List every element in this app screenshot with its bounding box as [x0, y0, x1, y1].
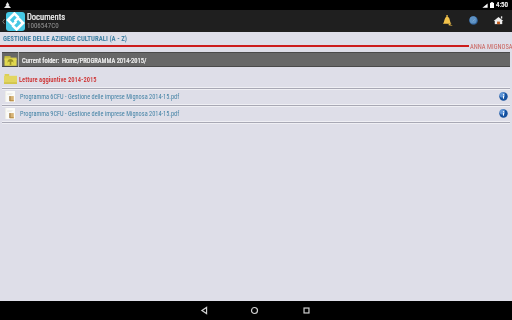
staticText: 1006547C0: [27, 22, 59, 30]
staticText: ANNA MIGNOSA: [470, 43, 512, 51]
button[interactable]: Home: [493, 15, 504, 26]
staticText: Letture aggiuntive 2014-2015: [19, 76, 97, 84]
button[interactable]: File information: [499, 92, 508, 101]
button[interactable]: Programma 6CFU - Gestione delle imprese …: [0, 88, 512, 105]
staticText: Programma 9CFU - Gestione delle imprese …: [20, 110, 180, 117]
staticText: Documents: [27, 12, 66, 22]
button[interactable]: Notifications: [442, 15, 453, 26]
button[interactable]: Programma 9CFU - Gestione delle imprese …: [0, 105, 512, 122]
staticText: 4:50: [496, 1, 509, 9]
staticText: GESTIONE DELLE AZIENDE CULTURALI (A - Z): [3, 35, 128, 43]
button[interactable]: Navigate up: [0, 10, 6, 32]
button[interactable]: Documents app: [6, 12, 25, 31]
button[interactable]: File information: [499, 109, 508, 118]
button[interactable]: Recent apps: [300, 304, 313, 317]
button[interactable]: Home: [248, 304, 261, 317]
button[interactable]: Documents app: [6, 10, 66, 32]
button[interactable]: Letture aggiuntive 2014-2015: [0, 67, 512, 88]
staticText: Programma 6CFU - Gestione delle imprese …: [20, 93, 180, 100]
staticText: Current folder: Home/PROGRAMMA 2014-2015…: [22, 57, 147, 65]
button[interactable]: Current folder: Home/PROGRAMMA 2014-2015…: [2, 52, 510, 67]
button[interactable]: Explore: [469, 16, 478, 25]
button[interactable]: Back: [198, 304, 211, 317]
